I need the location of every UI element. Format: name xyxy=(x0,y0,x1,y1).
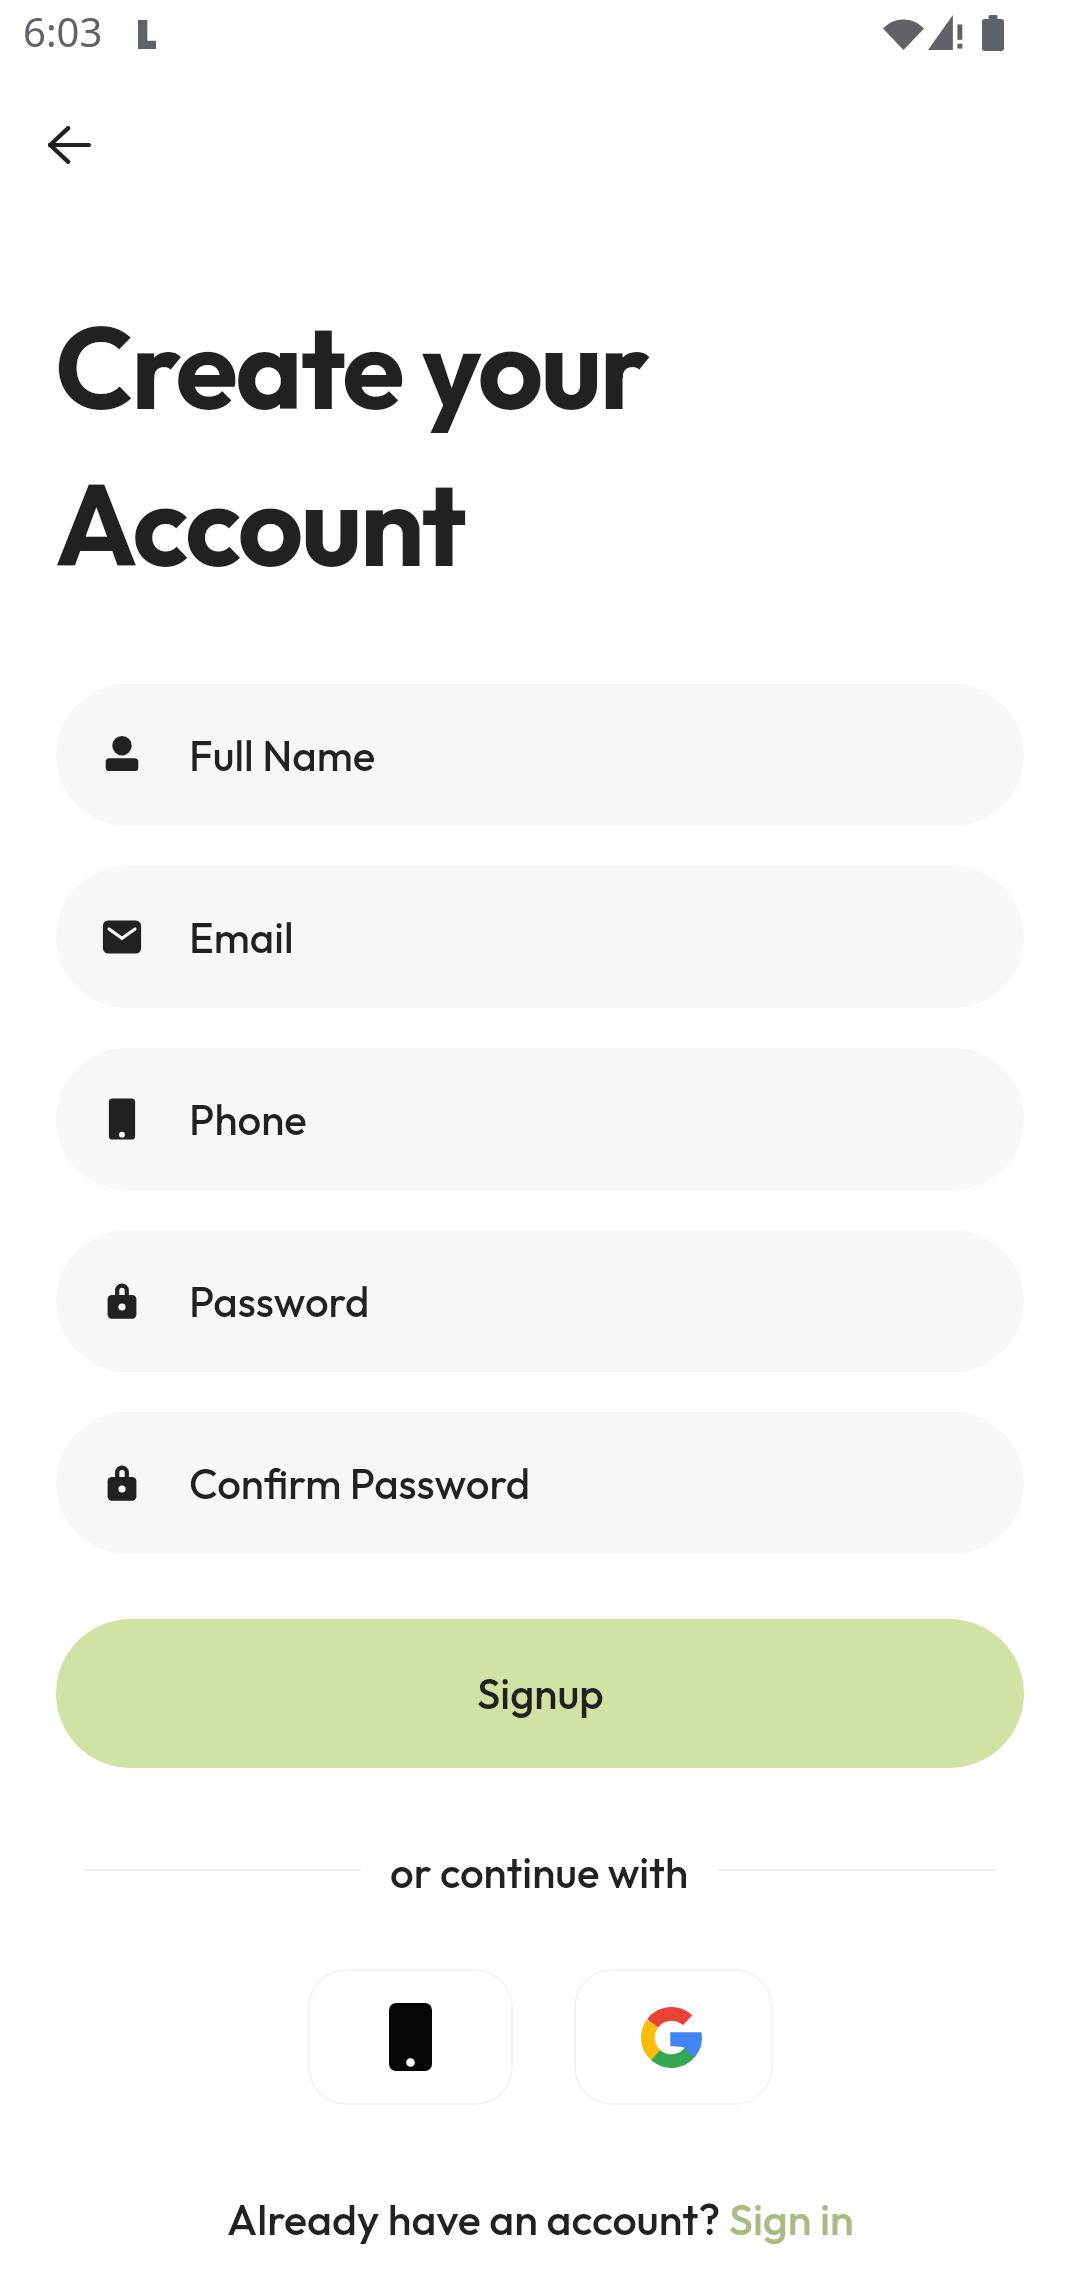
button[interactable]: Already have an account? xyxy=(56,2192,1024,2246)
staticText: Confirm Password xyxy=(189,1457,531,1510)
staticText: Full Name xyxy=(189,729,376,782)
staticText: Password xyxy=(189,1275,370,1328)
button[interactable]: Full Name xyxy=(56,684,1024,826)
staticText: Sign in xyxy=(729,2192,854,2246)
staticText: Already have an account? xyxy=(227,2192,729,2246)
staticText: Create your Account xyxy=(55,295,648,595)
button[interactable]: Back xyxy=(25,101,113,189)
staticText: Phone xyxy=(189,1093,307,1146)
button[interactable]: Signup xyxy=(56,1619,1024,1768)
staticText: Email xyxy=(189,911,294,964)
staticText: 6:03 xyxy=(23,4,103,58)
staticText: or continue with xyxy=(390,1846,689,1894)
button[interactable]: Password xyxy=(56,1230,1024,1372)
button[interactable]: Confirm Password xyxy=(56,1412,1024,1554)
staticText: Signup xyxy=(477,1667,604,1720)
button[interactable]: Continue with phone xyxy=(308,1969,513,2105)
button[interactable]: Email xyxy=(56,866,1024,1008)
button[interactable]: Continue with Google xyxy=(574,1969,773,2105)
button[interactable]: Phone xyxy=(56,1048,1024,1190)
